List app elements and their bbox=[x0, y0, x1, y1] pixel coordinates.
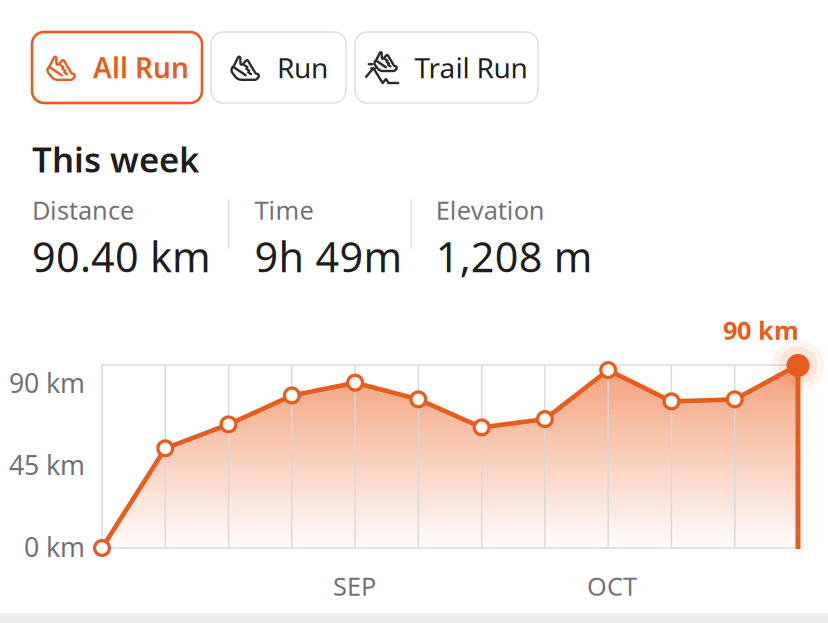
staticText: This week bbox=[32, 136, 199, 182]
staticText: Distance bbox=[32, 193, 134, 227]
staticText: All Run bbox=[93, 49, 189, 86]
staticText: 45 km bbox=[9, 447, 85, 482]
staticText: SEP bbox=[333, 569, 376, 603]
button[interactable]: Trail Run bbox=[355, 32, 538, 103]
button[interactable]: Run bbox=[211, 32, 346, 103]
staticText: Run bbox=[277, 49, 328, 86]
staticText: 0 km bbox=[24, 529, 85, 564]
staticText: Time bbox=[254, 193, 313, 227]
button[interactable]: All Run bbox=[32, 32, 202, 103]
staticText: 9h 49m bbox=[254, 229, 402, 284]
staticText: OCT bbox=[587, 569, 637, 603]
staticText: 90 km bbox=[9, 365, 85, 400]
staticText: 1,208 m bbox=[436, 229, 593, 284]
staticText: Elevation bbox=[436, 193, 545, 227]
staticText: 90 km bbox=[723, 313, 799, 347]
staticText: 90.40 km bbox=[32, 229, 211, 284]
staticText: Trail Run bbox=[414, 49, 527, 86]
